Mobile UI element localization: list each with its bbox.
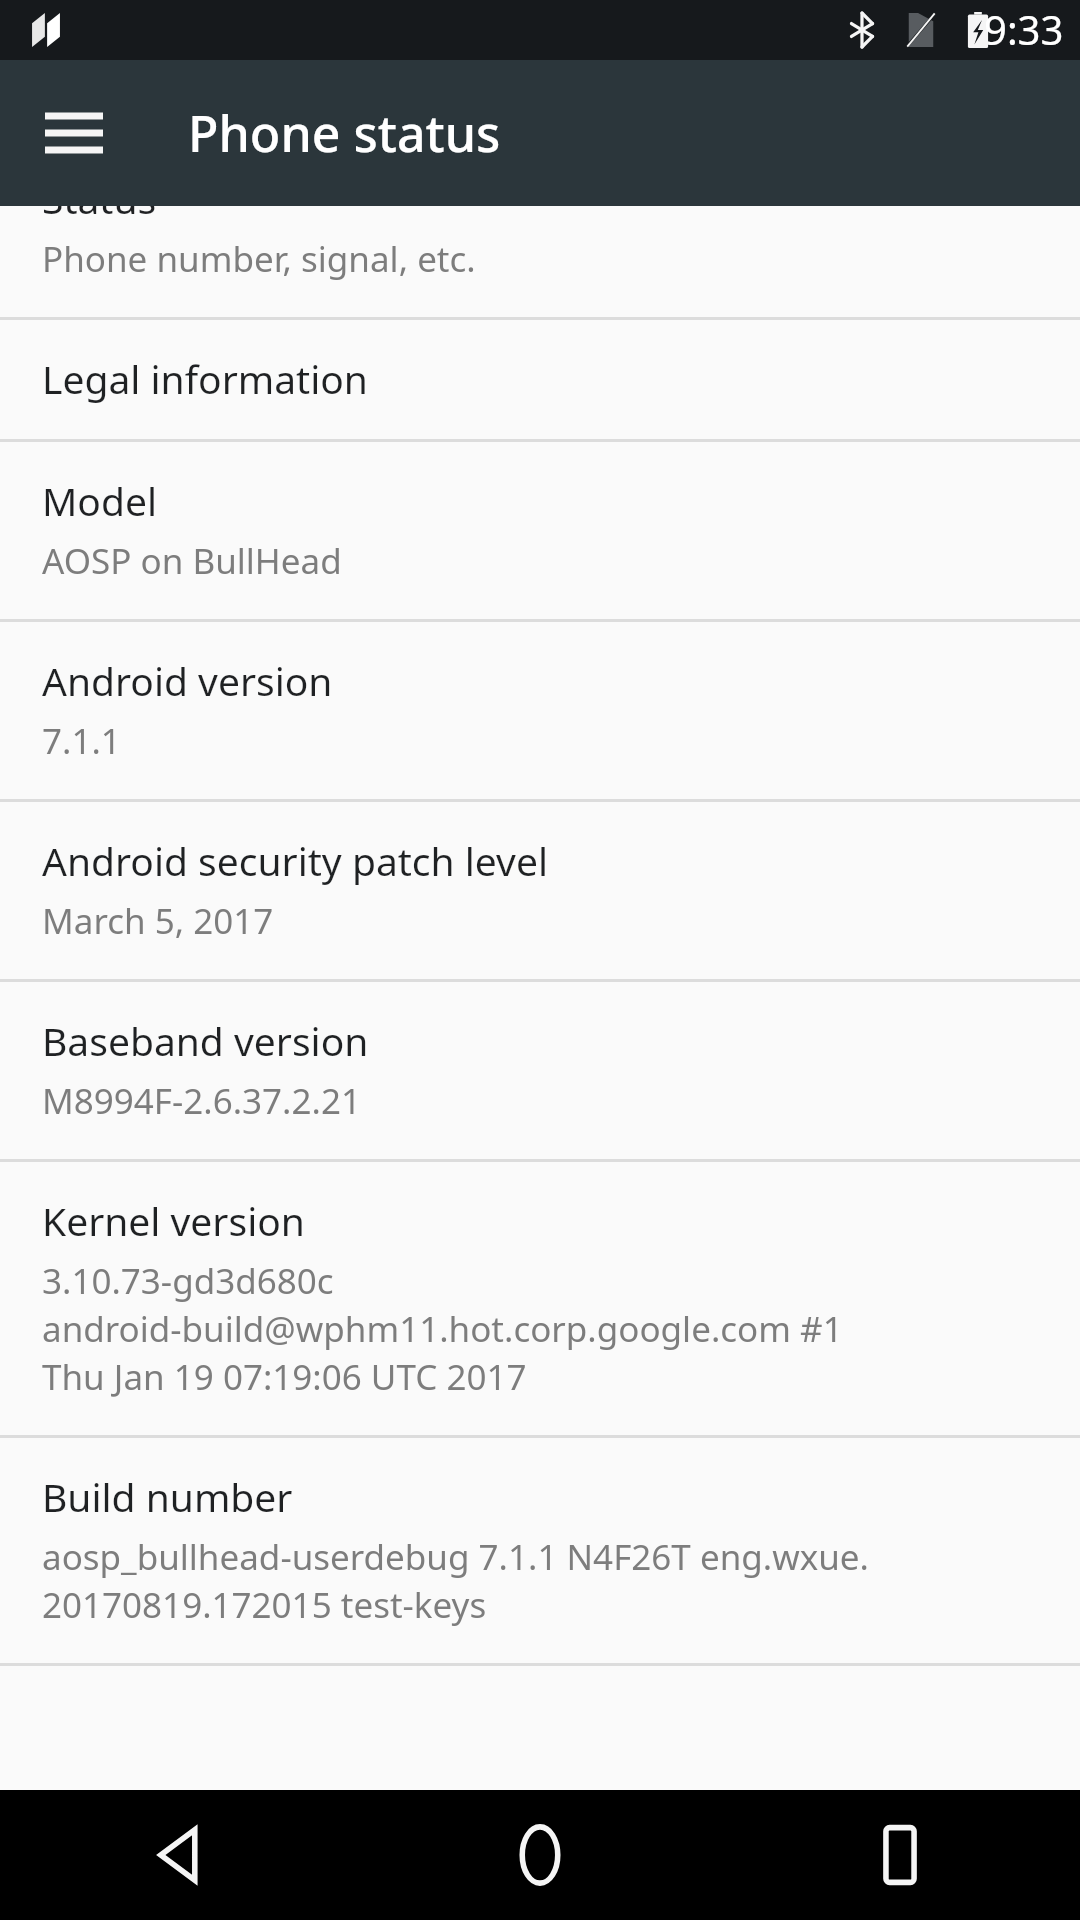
staticText: AOSP on BullHead [42, 537, 342, 585]
staticText: March 5, 2017 [42, 897, 274, 945]
button[interactable]: Open navigation menu [26, 85, 122, 181]
button[interactable]: Legal information [0, 320, 1080, 439]
staticText: aosp_bullhead-userdebug 7.1.1 N4F26T eng… [42, 1533, 869, 1581]
button[interactable]: Recent apps [720, 1790, 1080, 1920]
staticText: android-build@wphm11.hot.corp.google.com… [42, 1305, 843, 1353]
button[interactable]: Kernel version [0, 1162, 1080, 1435]
staticText: 20170819.172015 test-keys [42, 1581, 487, 1629]
staticText: Thu Jan 19 07:19:06 UTC 2017 [42, 1353, 527, 1401]
staticText: M8994F-2.6.37.2.21 [42, 1077, 361, 1125]
button[interactable]: Baseband version [0, 982, 1080, 1159]
button[interactable]: Home [360, 1790, 720, 1920]
staticText: Legal information [42, 352, 368, 405]
button[interactable]: Android security patch level [0, 802, 1080, 979]
staticText: Build number [42, 1470, 293, 1523]
staticText: Phone number, signal, etc. [42, 235, 476, 283]
staticText: Status [42, 206, 157, 225]
staticText: Model [42, 474, 158, 527]
staticText: Android version [42, 654, 333, 707]
staticText: Kernel version [42, 1194, 305, 1247]
button[interactable]: Build number [0, 1438, 1080, 1663]
staticText: Android security patch level [42, 834, 548, 887]
staticText: 7.1.1 [42, 717, 121, 765]
staticText: 9:33 [984, 2, 1064, 56]
staticText: Baseband version [42, 1014, 369, 1067]
button[interactable]: Back [0, 1790, 360, 1920]
button[interactable]: Status [0, 206, 1080, 317]
button[interactable]: Model [0, 442, 1080, 619]
staticText: 3.10.73-gd3d680c [42, 1257, 334, 1305]
staticText: Phone status [188, 99, 501, 167]
button[interactable]: Android version [0, 622, 1080, 799]
